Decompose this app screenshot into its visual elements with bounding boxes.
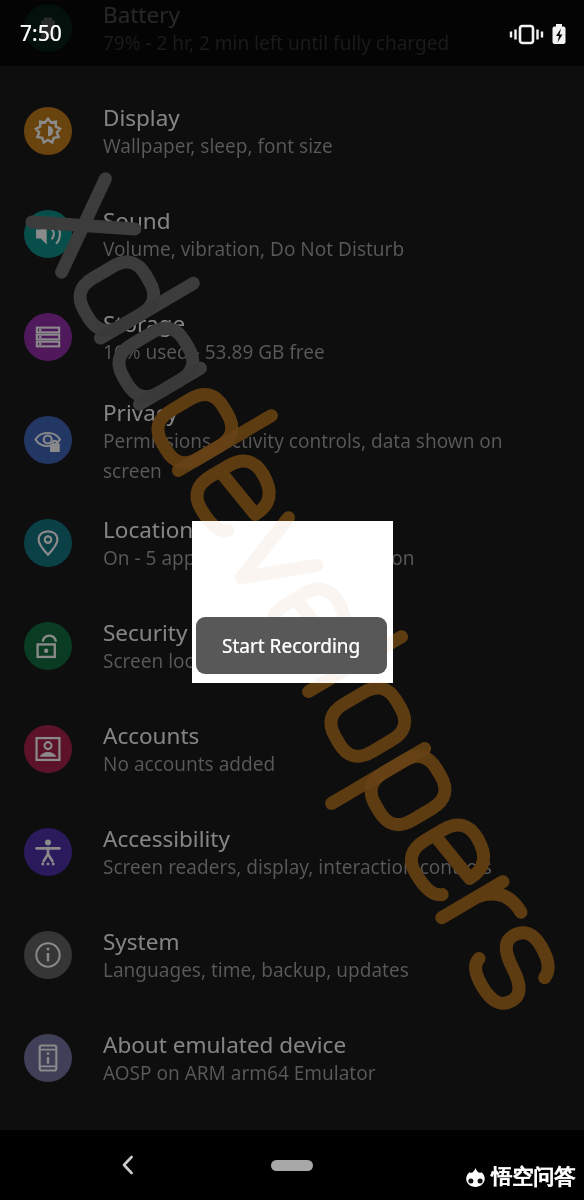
staticText: Languages, time, backup, updates [103, 957, 409, 983]
staticText: 16% used - 53.89 GB free [103, 339, 325, 365]
staticText: On - 5 apps have access to location [103, 545, 415, 571]
button[interactable]: Start Recording [196, 617, 387, 674]
staticText: No accounts added [103, 751, 276, 777]
staticText: AOSP on ARM arm64 Emulator [103, 1060, 376, 1086]
staticText: 悟空问答 [491, 1164, 575, 1190]
button[interactable]: Battery [0, 0, 584, 79]
staticText: Location [103, 514, 194, 545]
staticText: Accessibility [103, 823, 230, 854]
staticText: System [103, 926, 180, 957]
button[interactable]: Display [0, 79, 584, 182]
staticText: Battery [103, 0, 180, 30]
staticText: 79% - 2 hr, 2 min left until fully charg… [103, 30, 450, 56]
button[interactable]: Storage [0, 285, 584, 388]
staticText: Screen readers, display, interaction con… [103, 854, 492, 880]
button[interactable]: Accounts [0, 697, 584, 800]
staticText: Screen lock [103, 648, 204, 674]
staticText: Sound [103, 205, 171, 236]
staticText: About emulated device [103, 1029, 347, 1060]
staticText: Storage [103, 308, 186, 339]
button[interactable]: Accessibility [0, 800, 584, 903]
staticText: Accounts [103, 720, 200, 751]
staticText: Start Recording [222, 633, 361, 659]
button[interactable]: Back [104, 1141, 152, 1189]
button[interactable]: Sound [0, 182, 584, 285]
button[interactable]: Privacy [0, 388, 584, 491]
staticText: 7:50 [20, 19, 62, 48]
button[interactable]: About emulated device [0, 1006, 584, 1109]
button[interactable]: Security [0, 594, 584, 697]
staticText: Display [103, 102, 180, 133]
staticText: Volume, vibration, Do Not Disturb [103, 236, 405, 262]
staticText: Permissions, activity controls, data sho… [103, 428, 503, 483]
button[interactable]: Home [271, 1160, 313, 1171]
staticText: Privacy [103, 397, 179, 428]
button[interactable]: System [0, 903, 584, 1006]
staticText: Security [103, 617, 188, 648]
button[interactable]: Location [0, 491, 584, 594]
staticText: Wallpaper, sleep, font size [103, 133, 333, 159]
